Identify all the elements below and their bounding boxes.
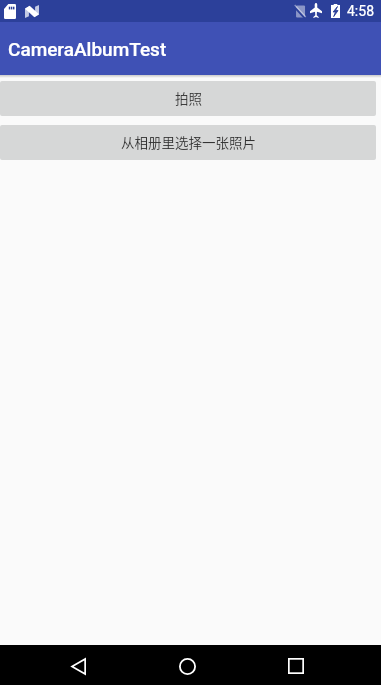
button[interactable]: Recents — [266, 645, 326, 685]
button[interactable]: Home — [157, 645, 217, 685]
button[interactable]: 从相册里选择一张照片 — [0, 125, 376, 160]
button[interactable]: 拍照 — [0, 81, 376, 116]
staticText: CameraAlbumTest — [8, 38, 167, 60]
staticText: 4:58 — [347, 3, 374, 19]
button[interactable]: Back — [48, 645, 108, 685]
staticText: 拍照 — [175, 88, 202, 108]
staticText: 从相册里选择一张照片 — [121, 132, 256, 152]
